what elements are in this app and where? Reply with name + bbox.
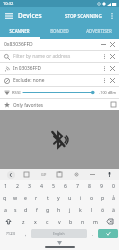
button[interactable]: ä <box>108 203 119 215</box>
button[interactable]: l <box>86 203 97 215</box>
staticText: n <box>81 218 85 225</box>
button[interactable]: More options <box>105 9 119 23</box>
staticText: w <box>13 194 18 201</box>
staticText: s <box>14 206 17 213</box>
button[interactable]: Backspace <box>101 215 119 227</box>
button[interactable]: g <box>42 203 53 215</box>
button[interactable]: More <box>86 169 99 180</box>
button[interactable]: BONDED <box>39 24 79 37</box>
button[interactable]: å <box>108 191 119 203</box>
button[interactable]: m <box>89 215 101 227</box>
staticText: p <box>101 194 105 201</box>
button[interactable]: Shift <box>0 215 17 227</box>
staticText: c <box>46 218 49 225</box>
button[interactable]: b <box>65 215 77 227</box>
button[interactable]: Clear <box>108 76 117 85</box>
button[interactable]: Voice input <box>103 169 116 180</box>
staticText: f <box>36 206 38 213</box>
button[interactable]: 5 <box>47 180 59 191</box>
staticText: -100 dBm <box>99 90 117 95</box>
staticText: English <box>53 231 65 236</box>
button[interactable]: r <box>31 191 42 203</box>
button[interactable]: Clear <box>108 40 117 49</box>
button[interactable]: 3 <box>23 180 35 191</box>
button[interactable]: Clipboard <box>53 169 66 180</box>
staticText: ADVERTISER <box>86 28 112 34</box>
button[interactable]: 4 <box>35 180 47 191</box>
staticText: v <box>58 218 61 225</box>
button[interactable]: Only favorites <box>0 99 119 110</box>
staticText: t <box>47 194 49 201</box>
button[interactable]: c <box>41 215 53 227</box>
button[interactable]: Stickers <box>20 169 33 180</box>
button[interactable]: 1 <box>0 180 11 191</box>
staticText: j <box>69 206 71 213</box>
button[interactable]: 9 <box>95 180 107 191</box>
button[interactable]: 0 <box>107 180 119 191</box>
staticText: d <box>24 206 28 213</box>
button[interactable]: More <box>101 65 108 72</box>
staticText: a <box>4 206 7 213</box>
button[interactable]: o <box>86 191 97 203</box>
button[interactable]: More <box>101 77 108 84</box>
button[interactable]: z <box>17 215 29 227</box>
button[interactable]: ?123 <box>1 227 20 240</box>
button[interactable]: n <box>77 215 89 227</box>
button[interactable]: f <box>31 203 42 215</box>
button[interactable]: ADVERTISER <box>79 24 119 37</box>
button[interactable]: Back <box>4 169 17 180</box>
button[interactable]: Comma <box>20 227 31 240</box>
button[interactable]: u <box>64 191 75 203</box>
button[interactable]: s <box>10 203 20 215</box>
staticText: BONDED <box>50 28 69 34</box>
staticText: Only favorites <box>13 102 43 108</box>
button[interactable]: t <box>42 191 53 203</box>
staticText: r <box>35 194 38 201</box>
staticText: b <box>69 218 73 225</box>
button[interactable]: Filter by name or address <box>0 51 119 62</box>
button[interactable]: h <box>53 203 64 215</box>
staticText: 0x83036FFD <box>4 41 33 48</box>
staticText: In 03036FFD <box>13 65 42 72</box>
button[interactable]: Period <box>87 227 98 240</box>
staticText: h <box>57 206 61 213</box>
button[interactable]: STOP SCANNING <box>62 9 105 23</box>
button[interactable]: k <box>75 203 86 215</box>
button[interactable]: ö <box>97 203 108 215</box>
staticText: g <box>46 206 50 213</box>
button[interactable]: Settings <box>70 169 83 180</box>
button[interactable]: v <box>53 215 65 227</box>
button[interactable]: Open navigation drawer <box>0 7 17 24</box>
button[interactable]: More <box>101 53 108 60</box>
staticText: o <box>90 194 94 201</box>
button[interactable]: Enter <box>98 229 118 238</box>
button[interactable]: y <box>53 191 64 203</box>
button[interactable] <box>23 88 98 97</box>
button[interactable]: 8 <box>83 180 95 191</box>
button[interactable]: Exclude: none <box>0 75 119 86</box>
button[interactable]: SCANNER <box>0 24 39 37</box>
staticText: l <box>91 206 93 213</box>
button[interactable]: q <box>0 191 10 203</box>
staticText: 7 <box>76 182 79 189</box>
button[interactable]: 2 <box>11 180 23 191</box>
button[interactable]: d <box>20 203 31 215</box>
button[interactable]: 7 <box>71 180 83 191</box>
button[interactable]: w <box>10 191 20 203</box>
staticText: ä <box>112 206 115 213</box>
button[interactable]: i <box>75 191 86 203</box>
button[interactable]: GIF <box>37 169 50 180</box>
button[interactable]: Space <box>31 229 87 238</box>
staticText: q <box>3 194 7 201</box>
button[interactable]: 6 <box>59 180 71 191</box>
button[interactable]: Clear <box>108 52 117 61</box>
button[interactable]: Collapse <box>99 40 108 49</box>
button[interactable]: p <box>97 191 108 203</box>
button[interactable]: e <box>20 191 31 203</box>
button[interactable]: x <box>29 215 41 227</box>
staticText: ö <box>101 206 105 213</box>
button[interactable]: j <box>64 203 75 215</box>
button[interactable]: Clear <box>108 64 117 73</box>
button[interactable]: a <box>0 203 10 215</box>
button[interactable]: In 03036FFD <box>0 63 119 74</box>
